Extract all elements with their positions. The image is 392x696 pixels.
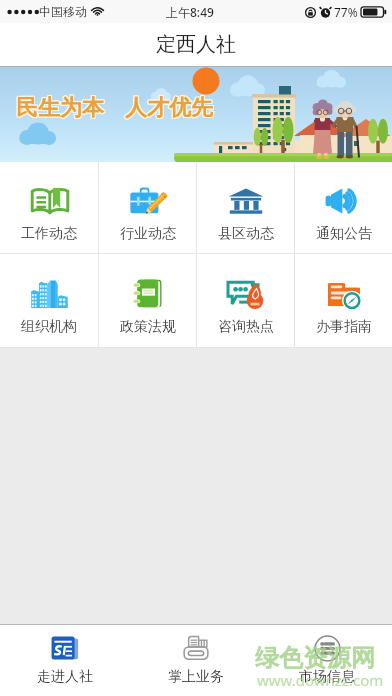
staticText: 人才优先	[126, 93, 214, 121]
staticText: 人才优先	[125, 93, 213, 121]
staticText: 人才优先	[124, 93, 212, 121]
staticText: 咨询热点	[218, 318, 274, 336]
button[interactable]: 工作动态	[0, 162, 98, 253]
staticText: 民生为本	[15, 95, 103, 123]
button[interactable]: 县区动态	[197, 162, 294, 253]
staticText: 民生为本	[15, 94, 103, 122]
staticText: 绿色资源网	[255, 643, 375, 673]
staticText: 通知公告	[316, 225, 372, 243]
staticText: 走进人社	[37, 668, 93, 686]
staticText: 民生为本	[16, 94, 104, 122]
staticText: 民生为本	[17, 93, 105, 121]
button[interactable]: 政策法规	[99, 254, 196, 347]
staticText: 民生为本	[16, 95, 104, 123]
staticText: 县区动态	[218, 225, 274, 243]
staticText: 人才优先	[125, 94, 213, 122]
button[interactable]: 通知公告	[295, 162, 392, 253]
staticText: 政策法规	[120, 318, 176, 336]
staticText: 人才优先	[126, 95, 214, 123]
staticText: 人才优先	[124, 95, 212, 123]
staticText: 人才优先	[125, 95, 213, 123]
staticText: 中国移动	[39, 4, 87, 19]
button[interactable]: 掌上业务	[130, 624, 261, 696]
button[interactable]: 行业动态	[99, 162, 196, 253]
staticText: 民生为本	[16, 93, 104, 121]
button[interactable]: 办事指南	[295, 254, 392, 347]
button[interactable]: 走进人社	[0, 624, 130, 696]
staticText: 77%	[334, 4, 358, 20]
button[interactable]: 市场信息	[261, 624, 392, 696]
staticText: 市场信息	[299, 668, 355, 686]
staticText: 上午8:49	[166, 4, 214, 20]
button[interactable]: 咨询热点	[197, 254, 294, 347]
staticText: 人才优先	[124, 94, 212, 122]
staticText: 掌上业务	[168, 668, 224, 686]
staticText: 民生为本	[17, 94, 105, 122]
staticText: 工作动态	[21, 225, 77, 243]
staticText: 民生为本	[15, 93, 103, 121]
staticText: 组织机构	[21, 318, 77, 336]
staticText: 人才优先	[126, 94, 214, 122]
staticText: 行业动态	[120, 225, 176, 243]
staticText: 定西人社	[156, 32, 236, 57]
button[interactable]: 组织机构	[0, 254, 98, 347]
staticText: 民生为本	[17, 95, 105, 123]
staticText: www.downzz.com	[257, 670, 384, 690]
staticText: 办事指南	[316, 318, 372, 336]
